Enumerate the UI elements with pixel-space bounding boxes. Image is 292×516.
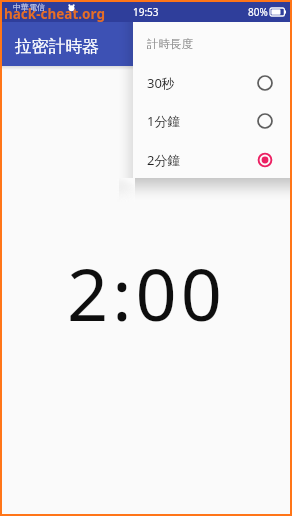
button[interactable]: 2:00 [2,66,290,514]
staticText: 2分鐘 [147,151,181,169]
staticText: 19:53 [133,5,159,19]
button[interactable]: 2分鐘 [133,141,290,179]
staticText: 拉密計時器 [15,36,99,57]
staticText: 80% [248,5,268,19]
other: Not selected [257,113,273,129]
staticText: 中華電信 [13,2,45,12]
other: Not selected [257,75,273,91]
other: Selected [257,152,273,168]
staticText: 30秒 [147,74,175,92]
staticText: 計時長度 [147,37,193,51]
staticText: 2:00 [67,244,226,342]
staticText: hack-cheat.org [4,5,105,23]
button[interactable]: 30秒 [133,64,290,102]
button[interactable]: 1分鐘 [133,102,290,140]
staticText: 1分鐘 [147,112,181,130]
